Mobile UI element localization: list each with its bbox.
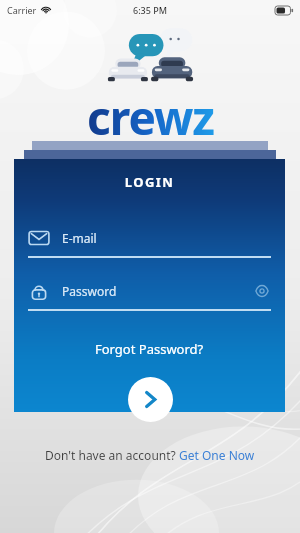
button[interactable]: E-mail: [14, 229, 285, 258]
button[interactable]: Submit login: [128, 377, 173, 422]
button[interactable]: Password: [14, 282, 285, 311]
staticText: Get One Now: [179, 447, 255, 463]
staticText: Don't have an account?: [45, 447, 179, 463]
staticText: LOGIN: [14, 173, 285, 191]
staticText: Carrier: [7, 4, 37, 16]
button[interactable]: Get One Now: [179, 447, 255, 463]
staticText: E-mail: [62, 230, 97, 246]
button[interactable]: Forgot Password?: [87, 337, 212, 361]
staticText: 6:35 PM: [133, 4, 167, 16]
staticText: Forgot Password?: [95, 340, 204, 358]
staticText: Password: [62, 283, 117, 299]
staticText: crewz: [87, 86, 214, 149]
button[interactable]: Show password: [253, 282, 271, 300]
